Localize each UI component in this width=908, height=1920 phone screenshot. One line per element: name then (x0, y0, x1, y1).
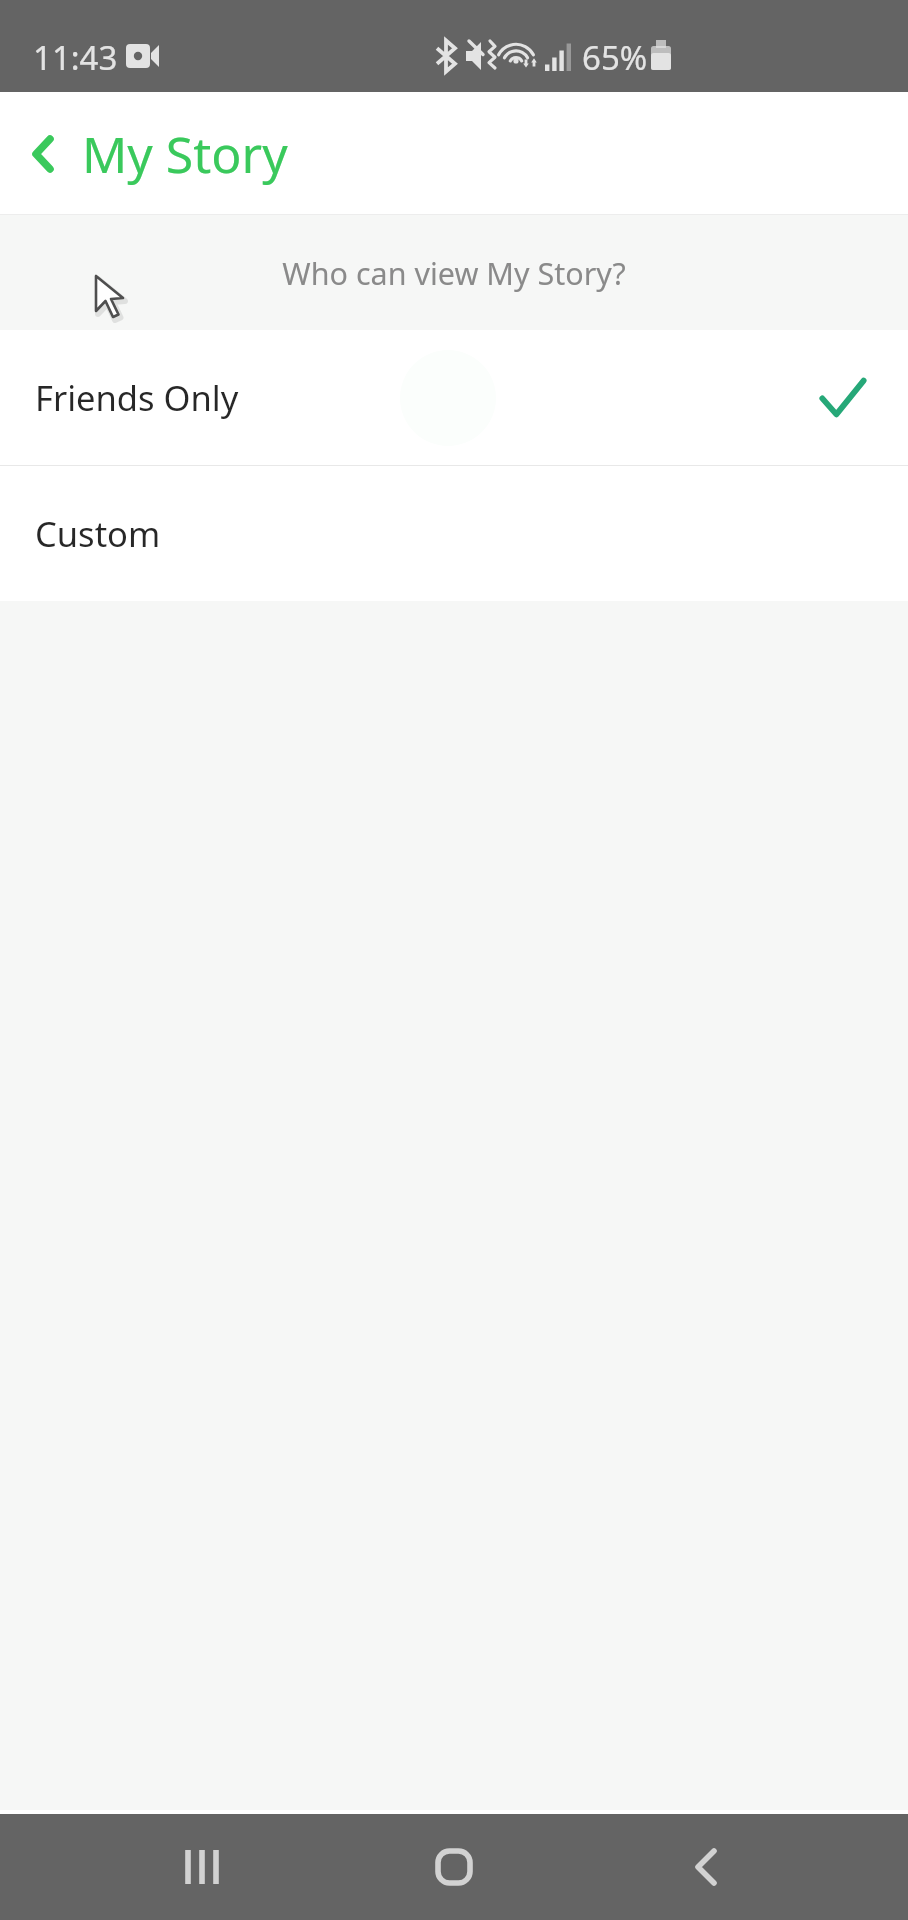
staticText: My Story (82, 120, 288, 188)
button[interactable]: Custom (0, 466, 908, 601)
staticText: Custom (35, 510, 161, 557)
staticText: 11:43 (33, 35, 118, 80)
button[interactable]: Friends Only (0, 330, 908, 465)
button[interactable]: Back (656, 1817, 756, 1917)
button[interactable]: Back (6, 116, 82, 192)
button[interactable]: Recents (152, 1817, 252, 1917)
button[interactable]: Home (404, 1817, 504, 1917)
staticText: Who can view My Story? (282, 252, 626, 294)
staticText: Friends Only (35, 374, 239, 421)
staticText: 65% (582, 35, 648, 80)
